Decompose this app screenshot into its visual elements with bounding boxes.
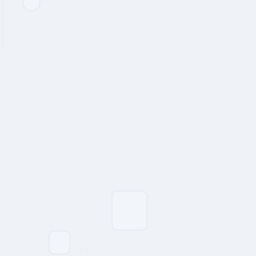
button[interactable]: Profile [23, 0, 40, 11]
